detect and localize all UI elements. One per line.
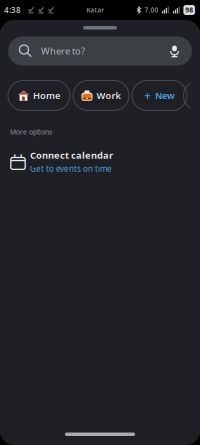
button[interactable]: Work <box>73 80 129 110</box>
button[interactable]: + <box>132 80 187 110</box>
staticText: New <box>155 89 175 102</box>
staticText: Home <box>33 89 60 102</box>
staticText: Work <box>96 89 120 102</box>
button[interactable]: Where to? <box>8 36 192 65</box>
staticText: Where to? <box>41 45 85 57</box>
staticText: Connect calendar <box>30 149 113 161</box>
button[interactable]: Connect calendar <box>10 145 190 177</box>
staticText: More options <box>10 127 52 136</box>
button[interactable]: Home <box>8 80 70 110</box>
staticText: 98 <box>185 6 193 14</box>
staticText: Katar <box>86 6 104 14</box>
staticText: 7.00 <box>144 6 158 14</box>
staticText: 4:38 <box>4 5 21 15</box>
staticText: + <box>144 87 151 103</box>
staticText: Get to events on time <box>30 163 112 174</box>
